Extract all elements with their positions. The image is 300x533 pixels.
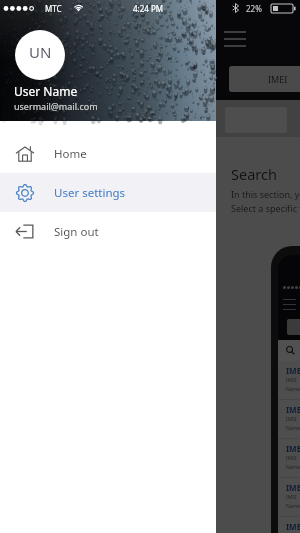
button[interactable]: IMEI	[229, 66, 300, 92]
button[interactable]: Sign out	[0, 212, 216, 251]
staticText: MTC	[45, 3, 62, 14]
staticText: Select a specific tab	[231, 202, 300, 214]
staticText: In this section, you can se	[231, 188, 300, 200]
staticText: Sign out	[54, 224, 99, 240]
staticText: UN	[29, 42, 52, 62]
staticText: Name	[286, 386, 300, 393]
staticText: 4:24 PM	[133, 3, 164, 14]
staticText: IMSI	[286, 455, 297, 462]
button[interactable]: Open navigation menu	[224, 31, 246, 47]
staticText: IMSI	[286, 416, 297, 423]
staticText: IMEI	[286, 443, 300, 454]
staticText: IMSI	[286, 494, 297, 501]
staticText: User Name	[14, 83, 78, 99]
button[interactable]: Home	[0, 134, 216, 173]
staticText: IMSI	[286, 377, 297, 384]
staticText: 22%	[246, 3, 262, 14]
staticText: Name	[286, 503, 300, 510]
staticText: usermail@mail.com	[14, 100, 98, 112]
staticText: IMEI	[286, 404, 300, 415]
staticText: IMEI	[286, 365, 300, 376]
staticText: IMEI	[286, 482, 300, 493]
staticText: IMEI	[268, 73, 288, 85]
staticText: Name	[286, 464, 300, 471]
staticText: Search	[231, 164, 277, 184]
staticText: Home	[54, 146, 87, 162]
staticText: Name	[286, 425, 300, 432]
staticText: IMEI	[286, 521, 300, 532]
button[interactable]: User settings	[0, 173, 216, 212]
staticText: User settings	[54, 185, 126, 201]
